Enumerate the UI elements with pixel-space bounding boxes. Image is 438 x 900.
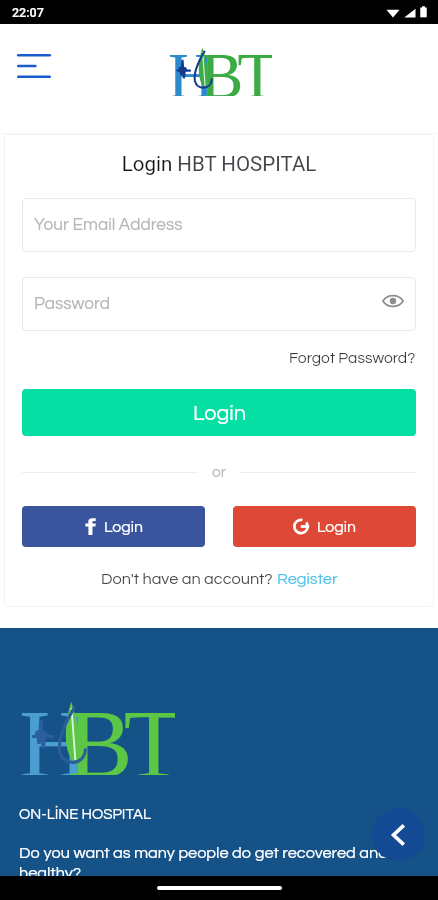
staticText: H bbox=[19, 690, 90, 775]
staticText: Login bbox=[317, 519, 356, 535]
button[interactable]: Your Email Address bbox=[22, 198, 416, 252]
staticText: BT bbox=[67, 690, 175, 775]
staticText: BT bbox=[200, 40, 272, 96]
staticText: Login HBT HOSPITAL bbox=[22, 152, 416, 176]
staticText: Don't have an account? bbox=[101, 571, 277, 588]
button[interactable]: Forgot Password? bbox=[289, 350, 416, 366]
staticText: H bbox=[168, 40, 215, 96]
staticText: Login bbox=[104, 519, 143, 535]
button[interactable]: Password bbox=[22, 277, 416, 331]
staticText: Login bbox=[193, 402, 246, 424]
staticText: Do you want as many people do get recove… bbox=[19, 845, 436, 881]
button[interactable]: Show password bbox=[382, 290, 404, 312]
staticText: Your Email Address bbox=[34, 216, 183, 234]
button[interactable]: Back bbox=[372, 808, 425, 861]
button[interactable]: Login bbox=[22, 506, 205, 547]
staticText: ON-LİNE HOSPITAL bbox=[19, 807, 151, 822]
button[interactable]: Login bbox=[22, 389, 416, 436]
button[interactable]: Login bbox=[233, 506, 416, 547]
staticText: Password bbox=[34, 295, 110, 313]
button[interactable]: Menu bbox=[5, 37, 63, 95]
button[interactable]: Register bbox=[277, 571, 338, 588]
staticText: or bbox=[212, 464, 226, 480]
staticText: 22:07 bbox=[12, 5, 44, 20]
